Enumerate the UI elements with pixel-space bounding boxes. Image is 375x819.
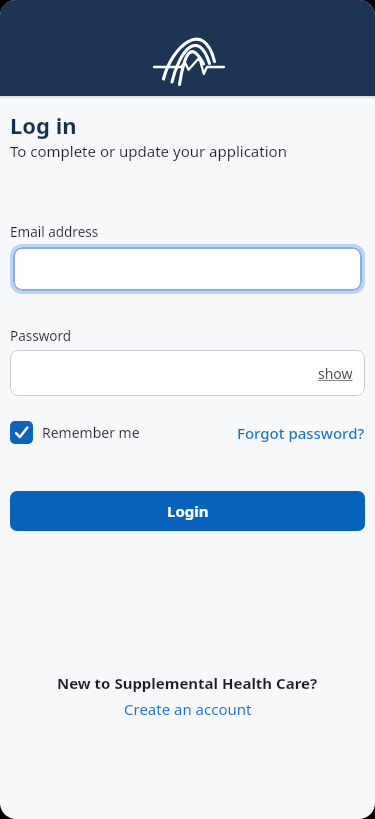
- button[interactable]: Forgot password?: [237, 423, 365, 443]
- staticText: To complete or update your application: [10, 141, 287, 161]
- staticText: Email address: [10, 223, 99, 241]
- button[interactable]: [13, 247, 362, 291]
- staticText: Create an account: [124, 699, 252, 719]
- button[interactable]: show: [318, 364, 353, 383]
- button[interactable]: show: [10, 350, 365, 396]
- staticText: show: [318, 364, 353, 383]
- staticText: Log in: [10, 110, 77, 140]
- staticText: Password: [10, 327, 72, 345]
- staticText: Login: [167, 501, 209, 521]
- button[interactable]: Login: [10, 491, 365, 531]
- staticText: New to Supplemental Health Care?: [57, 673, 318, 693]
- staticText: Forgot password?: [237, 423, 365, 443]
- button[interactable]: Remember me: [10, 421, 140, 444]
- button[interactable]: Create an account: [124, 699, 252, 719]
- staticText: Remember me: [42, 423, 140, 442]
